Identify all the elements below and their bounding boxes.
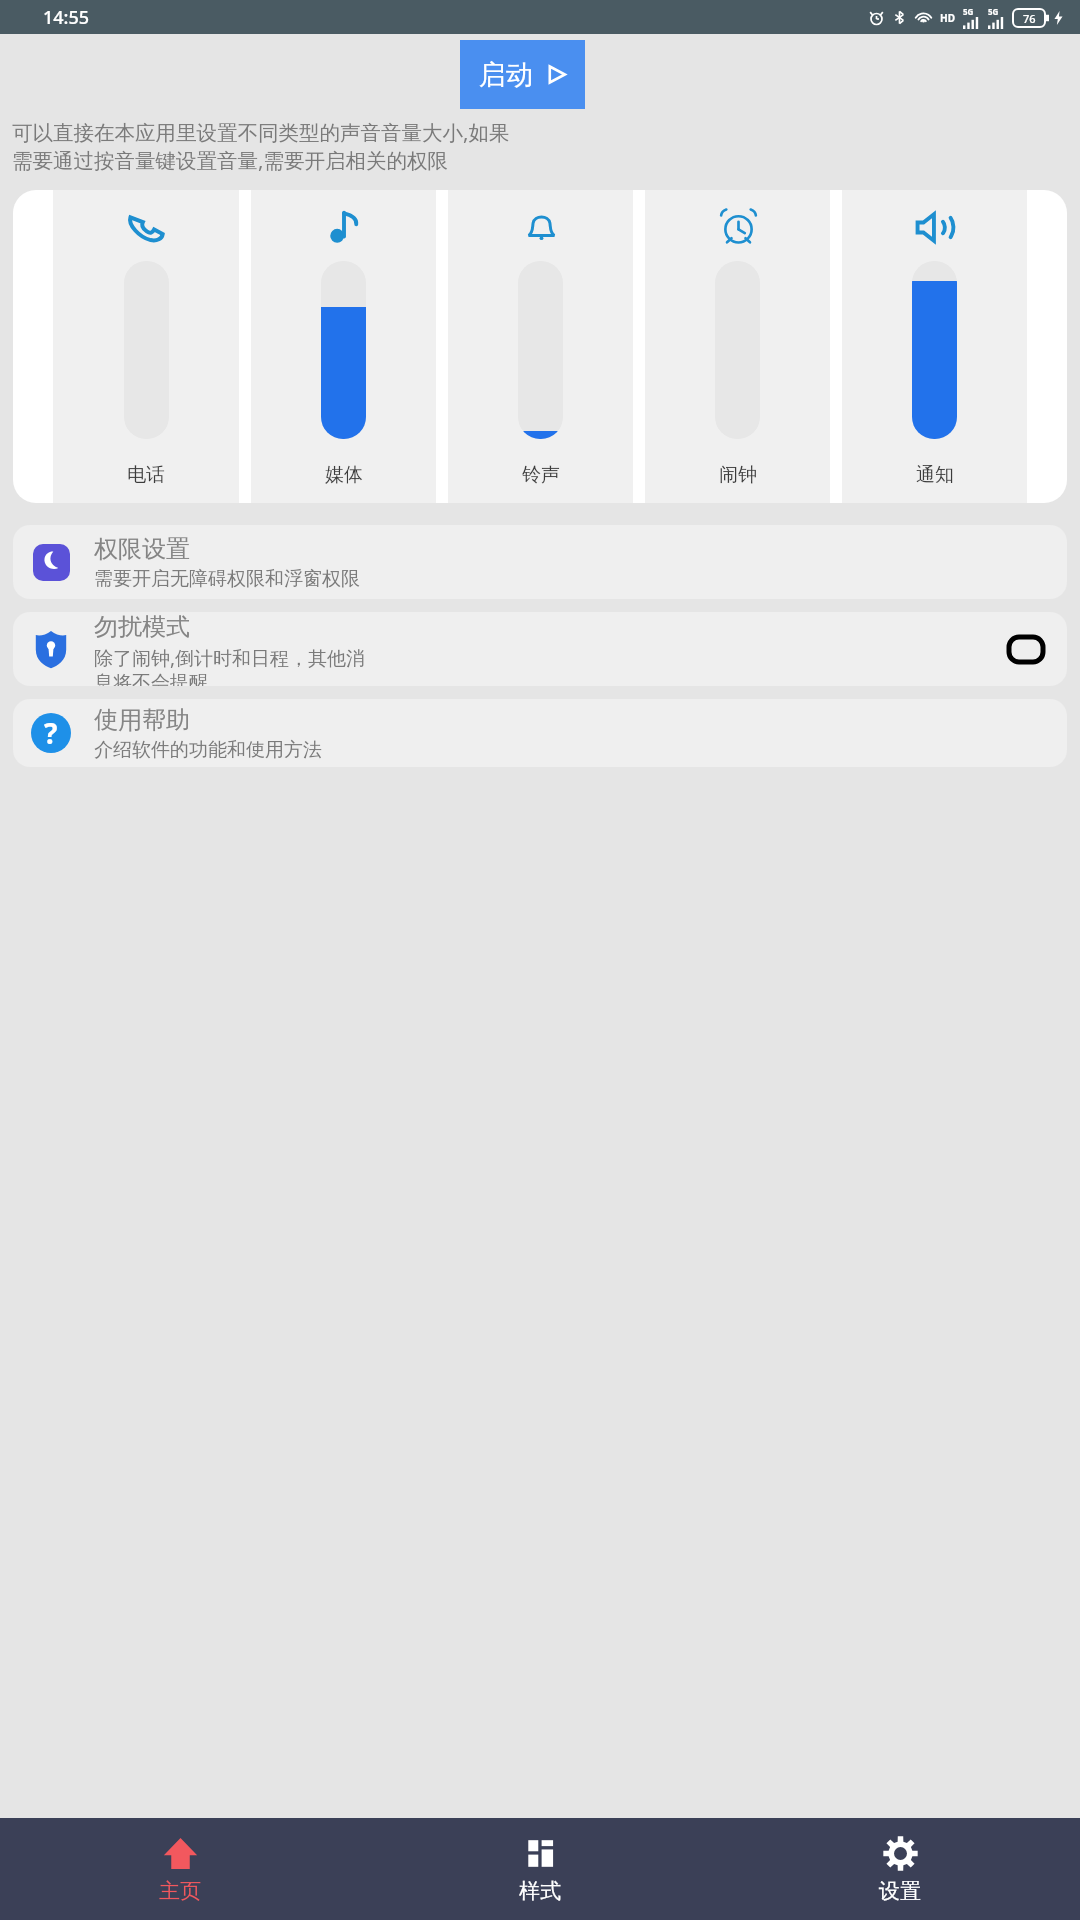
button[interactable]: 勿扰模式: [13, 612, 1067, 686]
button[interactable]: 媒体音量: [251, 190, 436, 503]
staticText: 媒体: [325, 463, 363, 487]
staticText: 电话: [127, 463, 165, 487]
staticText: 需要开启无障碍权限和浮窗权限: [94, 567, 360, 591]
button[interactable]: 权限设置: [13, 525, 1067, 599]
staticText: 除了闹钟,倒计时和日程，其他消: [94, 645, 366, 671]
staticText: 息将不会提醒: [94, 671, 208, 686]
button[interactable]: ?: [13, 699, 1067, 767]
staticText: 权限设置: [94, 534, 190, 564]
staticText: 76: [1023, 11, 1036, 26]
staticText: 启动: [479, 58, 533, 92]
staticText: 通知: [916, 463, 954, 487]
button[interactable]: 铃声音量: [448, 190, 633, 503]
staticText: HD: [940, 11, 955, 25]
button[interactable]: 主页: [0, 1818, 360, 1920]
staticText: 5G: [963, 6, 974, 17]
staticText: 需要通过按音量键设置音量,需要开启相关的权限: [12, 146, 448, 174]
staticText: 样式: [519, 1878, 561, 1904]
staticText: 主页: [159, 1878, 201, 1904]
staticText: 介绍软件的功能和使用方法: [94, 738, 322, 762]
button[interactable]: 样式: [360, 1818, 720, 1920]
button[interactable]: 设置: [720, 1818, 1080, 1920]
staticText: 勿扰模式: [94, 612, 190, 642]
staticText: 使用帮助: [94, 705, 190, 735]
button[interactable]: 通知音量: [842, 190, 1027, 503]
staticText: 5G: [988, 6, 999, 17]
button[interactable]: 勿扰模式开关: [1007, 635, 1045, 664]
staticText: 设置: [879, 1878, 921, 1904]
staticText: ?: [44, 714, 58, 752]
button[interactable]: 启动: [460, 40, 585, 109]
staticText: 铃声: [522, 463, 560, 487]
staticText: 闹钟: [719, 463, 757, 487]
button[interactable]: 电话音量: [53, 190, 239, 503]
button[interactable]: 闹钟音量: [645, 190, 830, 503]
staticText: 14:55: [43, 5, 90, 30]
staticText: 可以直接在本应用里设置不同类型的声音音量大小,如果: [12, 118, 510, 146]
